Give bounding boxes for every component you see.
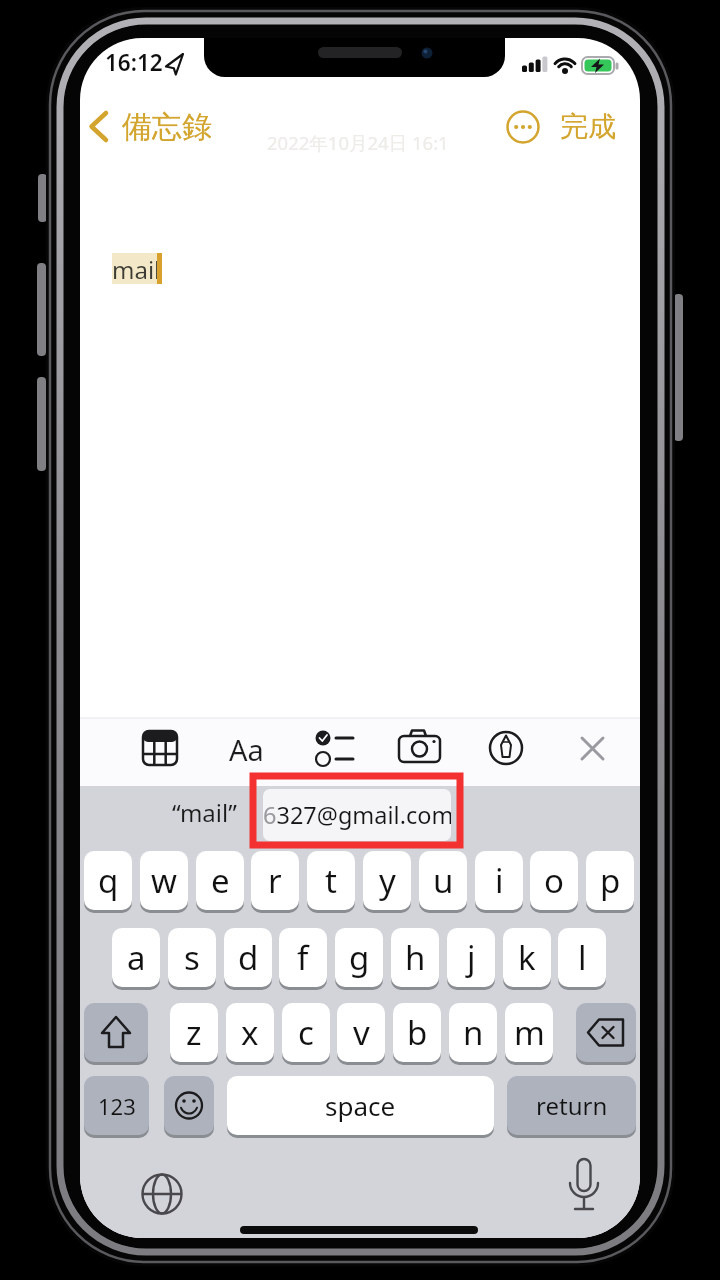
button[interactable]: t xyxy=(307,851,355,910)
button[interactable]: u xyxy=(419,851,467,910)
button[interactable]: d xyxy=(224,928,272,987)
button[interactable]: q xyxy=(84,851,132,910)
button[interactable] xyxy=(482,724,530,772)
button[interactable]: p xyxy=(586,851,634,910)
staticText: t xyxy=(325,858,337,903)
staticText: n xyxy=(463,1010,484,1055)
button[interactable]: i xyxy=(475,851,523,910)
staticText: mail xyxy=(112,253,157,284)
button[interactable]: s xyxy=(168,928,216,987)
staticText: 123 xyxy=(98,1091,136,1121)
button[interactable]: k xyxy=(503,928,551,987)
staticText: m xyxy=(514,1010,545,1055)
staticText: o xyxy=(544,858,564,903)
staticText: Aa xyxy=(229,730,264,766)
button[interactable]: l xyxy=(558,928,606,987)
staticText: s xyxy=(184,935,200,980)
staticText: b xyxy=(407,1010,428,1055)
button[interactable]: y xyxy=(363,851,411,910)
staticText: p xyxy=(600,858,621,903)
button[interactable] xyxy=(84,1003,148,1062)
staticText: k xyxy=(518,935,536,980)
staticText: h xyxy=(405,935,426,980)
staticText: c xyxy=(298,1010,314,1055)
button[interactable]: j xyxy=(447,928,495,987)
button[interactable]: m xyxy=(505,1003,553,1062)
staticText: v xyxy=(353,1010,370,1055)
button[interactable]: e xyxy=(196,851,244,910)
button[interactable] xyxy=(309,724,357,772)
button[interactable] xyxy=(136,724,184,772)
button[interactable]: a xyxy=(112,928,160,987)
button[interactable]: “mail” xyxy=(166,796,242,828)
button[interactable] xyxy=(576,1003,636,1062)
button[interactable] xyxy=(222,724,270,772)
staticText: d xyxy=(238,935,259,980)
staticText: e xyxy=(211,858,230,903)
button[interactable]: v xyxy=(337,1003,385,1062)
button[interactable]: h xyxy=(391,928,439,987)
button[interactable]: w xyxy=(140,851,188,910)
staticText: l xyxy=(578,935,587,980)
staticText: f xyxy=(297,935,309,980)
staticText: 備忘錄 xyxy=(122,108,212,144)
staticText: q xyxy=(98,858,119,903)
button[interactable]: z xyxy=(170,1003,218,1062)
button[interactable]: r xyxy=(251,851,299,910)
staticText: i xyxy=(495,858,504,903)
button[interactable]: o xyxy=(530,851,578,910)
button[interactable] xyxy=(263,789,451,841)
button[interactable]: c xyxy=(282,1003,330,1062)
button[interactable] xyxy=(560,1166,608,1214)
button[interactable] xyxy=(568,724,616,772)
staticText: space xyxy=(325,1088,396,1123)
staticText: a xyxy=(127,935,146,980)
button[interactable]: g xyxy=(335,928,383,987)
button[interactable]: x xyxy=(226,1003,274,1062)
button[interactable]: n xyxy=(449,1003,497,1062)
staticText: g xyxy=(349,935,370,980)
staticText: 16:12 xyxy=(105,47,163,77)
staticText: w xyxy=(151,858,177,903)
staticText: 6327@gmail.com xyxy=(263,799,451,831)
button[interactable]: f xyxy=(279,928,327,987)
staticText: “mail” xyxy=(172,796,237,828)
button[interactable]: 完成 xyxy=(558,108,618,144)
staticText: y xyxy=(379,858,396,903)
button[interactable] xyxy=(138,1170,186,1218)
button[interactable]: 備忘錄 xyxy=(122,108,232,144)
button[interactable]: return xyxy=(507,1076,636,1135)
staticText: 完成 xyxy=(560,109,616,144)
button[interactable]: 123 xyxy=(84,1076,149,1135)
button[interactable] xyxy=(395,724,443,772)
staticText: r xyxy=(268,858,282,903)
button[interactable]: space xyxy=(227,1076,494,1135)
button[interactable] xyxy=(503,107,543,147)
staticText: z xyxy=(186,1010,202,1055)
staticText: return xyxy=(536,1089,608,1122)
staticText: j xyxy=(467,935,476,980)
staticText: u xyxy=(433,858,454,903)
button[interactable] xyxy=(164,1076,214,1135)
button[interactable]: b xyxy=(393,1003,441,1062)
staticText: 2022年10月24日 16:1 xyxy=(267,130,449,155)
staticText: x xyxy=(241,1010,259,1055)
